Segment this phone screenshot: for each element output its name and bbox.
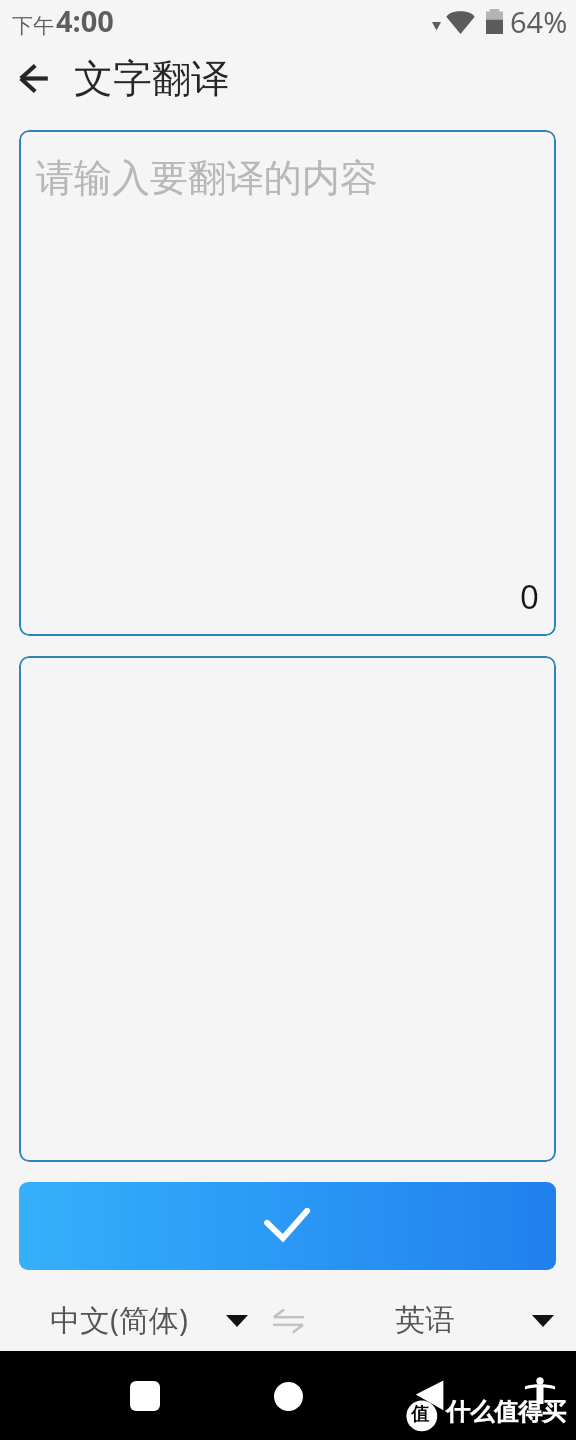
- staticText: 下午: [12, 13, 54, 39]
- button[interactable]: Swap languages: [263, 1296, 313, 1346]
- button[interactable]: 请输入要翻译的内容: [19, 130, 556, 636]
- button[interactable]: 英语: [395, 1290, 554, 1351]
- button[interactable]: Translate: [19, 1182, 556, 1270]
- staticText: 0: [520, 574, 539, 619]
- button[interactable]: [19, 656, 556, 1162]
- staticText: 64%: [510, 2, 568, 41]
- button[interactable]: 中文(简体): [50, 1290, 248, 1351]
- button[interactable]: Home: [260, 1368, 316, 1424]
- staticText: 文字翻译: [74, 54, 230, 103]
- staticText: 什么值得买: [446, 1397, 566, 1427]
- staticText: 请输入要翻译的内容: [36, 154, 378, 202]
- staticText: 英语: [395, 1301, 455, 1339]
- staticText: 中文(简体): [50, 1299, 188, 1340]
- button[interactable]: Back: [6, 50, 62, 106]
- staticText: 4:00: [56, 1, 114, 40]
- staticText: 值: [411, 1403, 429, 1426]
- other: Accessibility: [524, 1378, 556, 1404]
- button[interactable]: Recents: [117, 1368, 173, 1424]
